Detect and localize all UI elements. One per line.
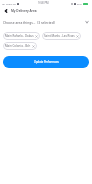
button[interactable]: Main Colonia - Bch: [3, 42, 37, 50]
staticText: Update Preferences: [34, 60, 59, 64]
button[interactable]: Remove Saint Marks - Las Rivas: [76, 35, 79, 38]
button[interactable]: Remove Main Rafaela - Dabus: [35, 35, 38, 38]
button[interactable]: Choose area things... (3 selected): [3, 18, 89, 25]
staticText: Main Colonia - Bch: [5, 44, 31, 48]
staticText: Choose area things... (3 selected): [3, 20, 55, 24]
button[interactable]: Saint Marks - Las Rivas: [42, 32, 81, 40]
staticText: My Delivery Area: [11, 9, 37, 13]
button[interactable]: Main Rafaela - Dabus: [3, 32, 40, 40]
button[interactable]: Update Preferences: [3, 56, 89, 68]
button[interactable]: Remove Main Colonia - Bch: [32, 45, 35, 48]
button[interactable]: Back: [2, 7, 9, 14]
staticText: Saint Marks - Las Rivas: [44, 34, 75, 38]
staticText: ull Claro 4G: [2, 2, 16, 5]
staticText: 9:58 PM: [38, 1, 49, 5]
staticText: 97%: [77, 2, 82, 5]
staticText: Main Rafaela - Dabus: [5, 34, 34, 38]
